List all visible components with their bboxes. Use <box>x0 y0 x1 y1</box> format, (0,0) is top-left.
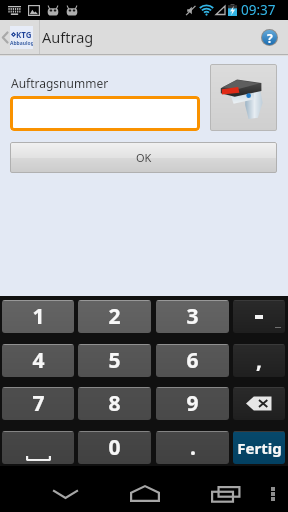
button[interactable]: 3 <box>156 300 229 333</box>
button[interactable] <box>10 96 200 131</box>
staticText: 7 <box>32 389 45 418</box>
button[interactable]: 4 <box>2 344 74 377</box>
staticText: OK <box>136 150 152 165</box>
button[interactable]: Scan barcode <box>210 64 277 131</box>
staticText: Auftragsnummer <box>11 75 109 91</box>
staticText: ? <box>267 30 273 46</box>
staticText: 6 <box>186 346 199 375</box>
button[interactable]: 7 <box>2 387 74 420</box>
button[interactable]: OK <box>10 142 277 173</box>
staticText: 09:37 <box>241 1 276 19</box>
button[interactable] <box>233 300 285 333</box>
staticText: 5 <box>108 346 121 375</box>
staticText: 4 <box>32 346 45 375</box>
button[interactable]: 8 <box>78 387 151 420</box>
button[interactable]: 1 <box>2 300 74 333</box>
button[interactable]: Space <box>2 431 74 464</box>
staticText: 1 <box>32 302 45 331</box>
staticText: 3 <box>186 302 199 331</box>
button[interactable]: 2 <box>78 300 151 333</box>
button[interactable]: Backspace <box>233 387 285 420</box>
staticText: , <box>256 346 262 375</box>
button[interactable]: 0 <box>78 431 151 464</box>
button[interactable]: 6 <box>156 344 229 377</box>
button[interactable]: Fertig <box>233 431 285 464</box>
button[interactable]: Help <box>250 20 288 54</box>
button[interactable]: . <box>156 431 229 464</box>
button[interactable]: Recent apps <box>190 466 260 512</box>
button[interactable]: , <box>233 344 285 377</box>
staticText: KTG <box>16 29 32 40</box>
button[interactable]: More options <box>258 466 288 512</box>
staticText: Abbaulog <box>10 40 33 47</box>
button[interactable]: 5 <box>78 344 151 377</box>
button[interactable]: Navigate up <box>0 20 39 54</box>
button[interactable]: 9 <box>156 387 229 420</box>
other: Backspace <box>246 396 272 411</box>
staticText: 9 <box>186 389 199 418</box>
staticText: 2 <box>108 302 121 331</box>
staticText: 0 <box>108 433 121 462</box>
staticText: Fertig <box>237 438 282 458</box>
other: Space <box>2 431 74 464</box>
button[interactable]: Home <box>105 466 185 512</box>
staticText: Auftrag <box>42 27 94 47</box>
staticText: . <box>190 433 196 462</box>
staticText: 8 <box>108 389 121 418</box>
button[interactable]: Hide keyboard <box>25 466 105 512</box>
